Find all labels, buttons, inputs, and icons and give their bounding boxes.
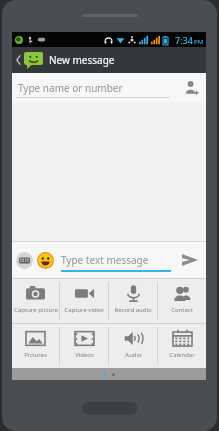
button[interactable]: Emoji — [37, 252, 54, 269]
button[interactable]: Pictures — [12, 324, 59, 368]
other: Back — [15, 54, 22, 66]
button[interactable]: Keyboard — [16, 252, 33, 269]
staticText: Type name or number — [18, 81, 123, 95]
staticText: Videos — [75, 351, 94, 359]
staticText: Capture picture — [14, 306, 58, 314]
button[interactable]: Back — [12, 47, 206, 73]
staticText: Calendar — [169, 351, 195, 359]
staticText: 7:34 — [175, 34, 193, 46]
button[interactable]: Contact — [158, 279, 206, 323]
staticText: Record audio — [114, 306, 152, 314]
staticText: New message — [49, 53, 115, 67]
button[interactable]: Capture picture — [12, 279, 59, 323]
button[interactable]: Calendar — [158, 324, 206, 368]
button[interactable]: Add contact — [176, 73, 206, 102]
button[interactable]: Audio — [109, 324, 157, 368]
staticText: Audio — [125, 351, 142, 359]
button[interactable]: Send — [178, 248, 202, 272]
staticText: Type text message — [61, 253, 149, 267]
staticText: Contact — [171, 306, 193, 314]
staticText: Pictures — [24, 351, 47, 359]
button[interactable]: Capture video — [60, 279, 108, 323]
button[interactable]: Type text message — [61, 242, 174, 278]
staticText: PM — [194, 38, 204, 46]
button[interactable]: Record audio — [109, 279, 157, 323]
button[interactable]: Type name or number — [12, 73, 176, 102]
staticText: Capture video — [64, 306, 104, 314]
button[interactable]: Videos — [60, 324, 108, 368]
